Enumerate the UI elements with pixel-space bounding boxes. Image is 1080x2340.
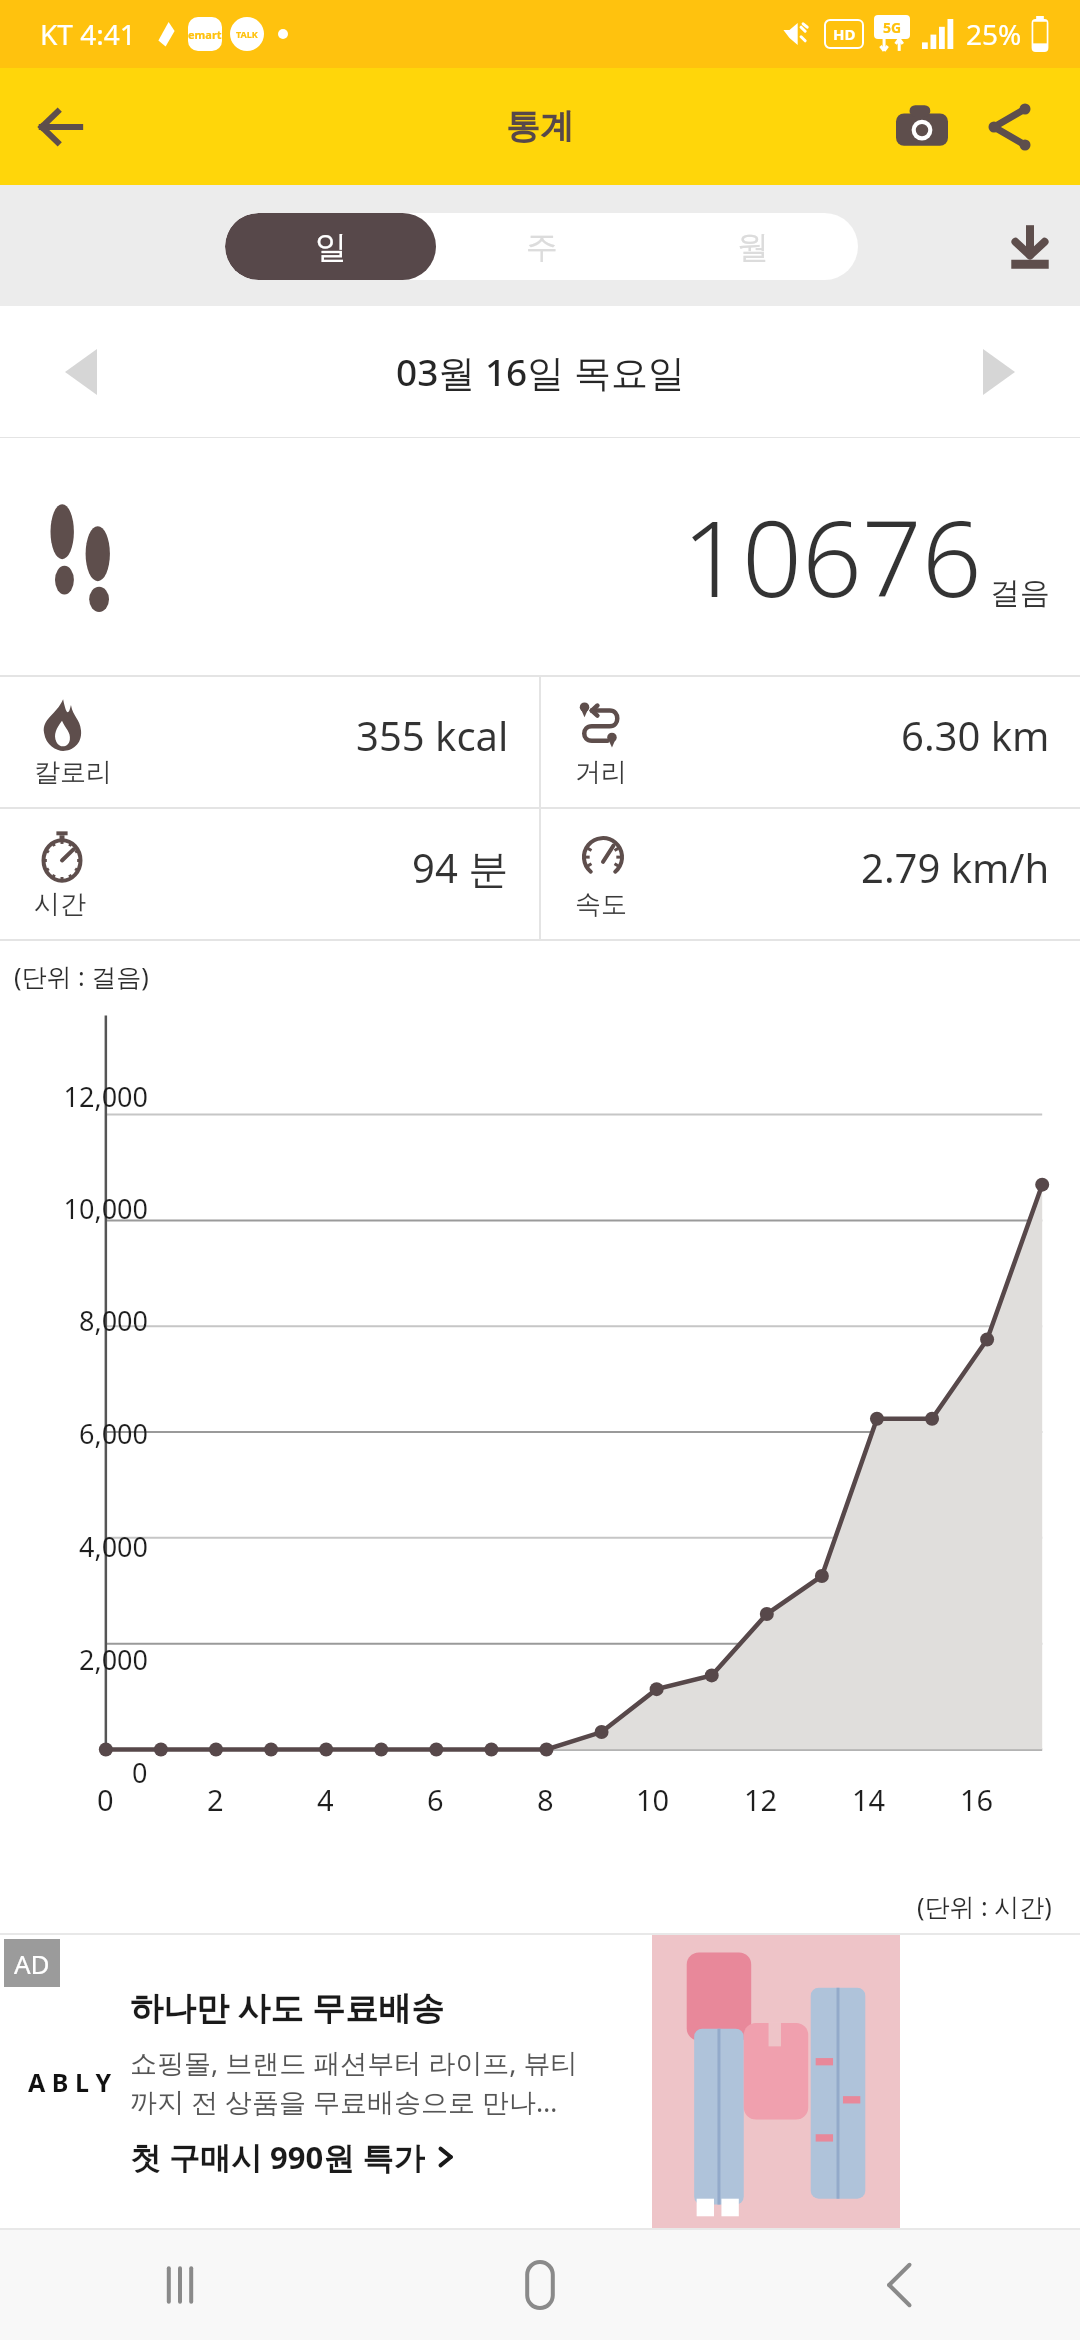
button[interactable]: Back xyxy=(720,2230,1080,2340)
button[interactable]: AD xyxy=(0,1935,1080,2228)
staticText: 속도 xyxy=(575,888,627,921)
staticText: 일 xyxy=(315,227,347,267)
staticText: 355 kcal xyxy=(356,708,509,762)
staticText: HD xyxy=(833,24,856,44)
staticText: 5G xyxy=(883,18,902,37)
staticText: 하나만 사도 무료배송 xyxy=(130,1985,445,2030)
staticText: 칼로리 xyxy=(34,756,112,789)
button[interactable]: Share xyxy=(968,85,1052,169)
button[interactable]: 속도 xyxy=(541,809,1080,939)
staticText: 시간 xyxy=(34,888,86,921)
staticText: 4 xyxy=(317,1780,334,1819)
staticText: 6.30 km xyxy=(901,708,1050,762)
button[interactable]: Previous day xyxy=(36,327,126,417)
staticText: 첫 구매시 990원 특가 xyxy=(130,2136,425,2178)
button[interactable]: 주 xyxy=(436,213,647,280)
staticText: 10676 xyxy=(682,485,982,628)
staticText: TALK xyxy=(236,28,258,40)
staticText: 6 xyxy=(427,1780,444,1819)
staticText: (단위 : 시간) xyxy=(917,1889,1052,1923)
button[interactable]: Recents xyxy=(0,2230,360,2340)
staticText: 2.79 km/h xyxy=(861,840,1050,894)
staticText: A B L Y xyxy=(28,2065,112,2099)
staticText: 주 xyxy=(526,227,558,267)
staticText: 8,000 xyxy=(78,1302,148,1339)
staticText: KT 4:41 xyxy=(40,15,136,53)
button[interactable]: 시간 xyxy=(0,809,539,939)
staticText: 2 xyxy=(207,1780,224,1819)
button[interactable]: 월 xyxy=(647,213,858,280)
staticText: 12 xyxy=(744,1780,778,1819)
staticText: 0 xyxy=(97,1780,114,1819)
button[interactable]: Next day xyxy=(954,327,1044,417)
staticText: 통계 xyxy=(506,105,574,148)
button[interactable]: Camera xyxy=(880,85,964,169)
button[interactable]: 거리 xyxy=(541,677,1080,807)
staticText: 03월 16일 목요일 xyxy=(396,346,685,397)
button[interactable]: Home xyxy=(360,2230,720,2340)
staticText: 월 xyxy=(737,227,769,267)
staticText: AD xyxy=(14,1946,50,1981)
staticText: 4,000 xyxy=(78,1528,148,1565)
staticText: 2,000 xyxy=(78,1641,148,1678)
staticText: 94 분 xyxy=(412,840,509,895)
staticText: 10,000 xyxy=(63,1190,148,1227)
staticText: 10 xyxy=(636,1780,670,1819)
staticText: 쇼핑몰, 브랜드 패션부터 라이프, 뷰티 까지 전 상품을 무료배송으로 만나… xyxy=(130,2044,578,2120)
staticText: 25% xyxy=(966,15,1022,53)
staticText: 8 xyxy=(537,1780,554,1819)
staticText: 0 xyxy=(132,1754,148,1791)
staticText: emart xyxy=(188,27,222,42)
staticText: 14 xyxy=(852,1780,886,1819)
staticText: 거리 xyxy=(575,756,627,789)
button[interactable]: 일 xyxy=(225,213,436,280)
staticText: (단위 : 걸음) xyxy=(14,959,149,993)
staticText: 12,000 xyxy=(63,1078,148,1115)
button[interactable]: Download xyxy=(980,196,1080,296)
button[interactable]: Back xyxy=(20,87,100,167)
staticText: 16 xyxy=(960,1780,994,1819)
button[interactable]: 칼로리 xyxy=(0,677,539,807)
staticText: 6,000 xyxy=(78,1415,148,1452)
staticText: 걸음 xyxy=(990,574,1050,612)
